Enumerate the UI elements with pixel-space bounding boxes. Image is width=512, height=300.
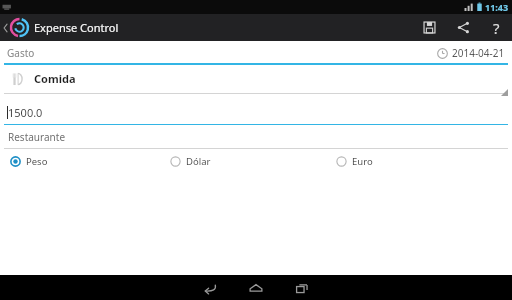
staticText: Expense Control [34,20,119,35]
button[interactable]: Help [480,14,512,41]
staticText: Restaurante [8,130,66,144]
button[interactable]: Comida [0,65,512,93]
button[interactable]: Share [446,14,480,41]
staticText: ? [493,18,500,38]
button[interactable]: Recents [279,275,325,300]
button[interactable]: Dólar [170,155,336,168]
button[interactable]: Peso [10,155,170,168]
button[interactable]: Navigate up [0,14,121,41]
button[interactable]: Save [412,14,446,41]
staticText: Euro [352,155,373,168]
staticText: 11:43 [485,1,509,13]
staticText: 2014-04-21 [452,46,505,60]
button[interactable]: Back [187,275,233,300]
staticText: Comida [34,71,76,86]
button[interactable]: Home [233,275,279,300]
staticText: Gasto [7,46,35,60]
button[interactable]: Gasto [0,41,512,63]
button[interactable]: Restaurante [0,125,512,148]
staticText: Peso [26,155,48,168]
button[interactable]: Euro [336,155,512,168]
button[interactable]: 1500.0 [0,100,512,124]
staticText: Dólar [186,155,211,168]
staticText: 1500.0 [8,105,43,120]
